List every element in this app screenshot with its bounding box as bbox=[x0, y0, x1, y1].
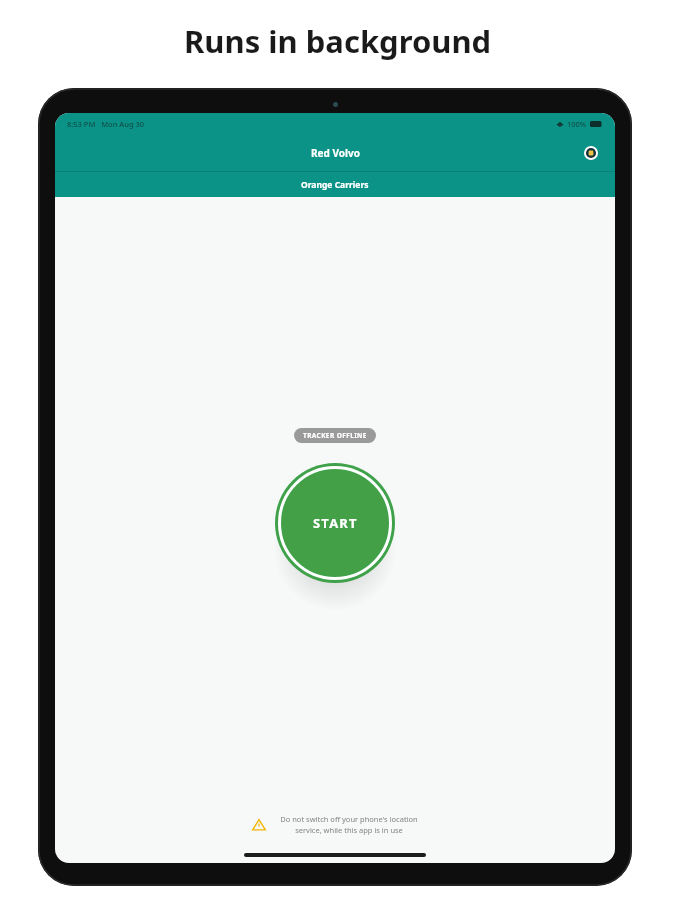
staticText: Orange Carriers bbox=[301, 179, 369, 191]
staticText: 100% bbox=[567, 119, 587, 129]
staticText: Runs in background bbox=[184, 20, 492, 62]
staticText: Red Volvo bbox=[311, 146, 360, 160]
staticText: 8:53 PM Mon Aug 30 bbox=[67, 119, 145, 129]
button[interactable]: START bbox=[275, 463, 395, 583]
staticText: TRACKER OFFLINE bbox=[303, 431, 367, 440]
staticText: START bbox=[313, 514, 358, 532]
staticText: Do not switch off your phone's location … bbox=[280, 814, 418, 835]
button[interactable]: Orange Carriers bbox=[55, 172, 615, 197]
button[interactable]: Account bbox=[581, 143, 601, 163]
